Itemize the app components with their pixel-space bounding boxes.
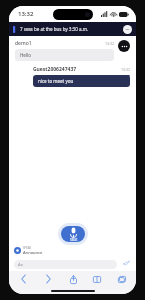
staticText: Aa (18, 262, 23, 267)
button[interactable]: Conversation menu (118, 40, 130, 52)
staticText: demo1 (15, 40, 105, 47)
staticText: TALK (70, 238, 78, 242)
staticText: SPEAK (23, 246, 32, 250)
button[interactable]: Aa (14, 260, 117, 269)
staticText: Guest2006247437 (33, 66, 121, 73)
button[interactable]: More options (123, 25, 132, 34)
staticText: 13:32 (105, 41, 114, 46)
button[interactable]: nice to meet you (33, 75, 130, 87)
staticText: Announce (23, 250, 43, 255)
button[interactable]: Share (62, 271, 84, 287)
button[interactable]: Talk (61, 226, 85, 242)
button[interactable]: Bookmarks (86, 271, 108, 287)
staticText: Hello (20, 52, 31, 58)
staticText: nice to meet you (38, 78, 74, 84)
button[interactable]: SPEAK (14, 246, 43, 255)
button[interactable]: Send (121, 259, 131, 269)
staticText: 7 sess be at the bus by 3:30 a.m. (20, 26, 123, 32)
staticText: 13:32 (18, 10, 34, 18)
button[interactable]: Hello (15, 49, 114, 61)
staticText: 13:32 (121, 67, 130, 72)
button[interactable]: Back (12, 271, 34, 287)
button[interactable]: 7 sess be at the bus by 3:30 a.m. (9, 22, 136, 36)
button[interactable]: Tabs (111, 271, 133, 287)
button[interactable]: Forward (37, 271, 59, 287)
